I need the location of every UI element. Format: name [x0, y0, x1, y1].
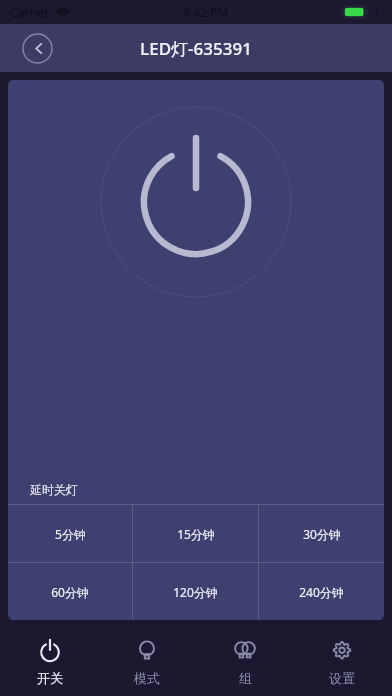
- button[interactable]: 120分钟: [133, 563, 258, 620]
- staticText: 延时关灯: [30, 482, 78, 497]
- staticText: 开关: [37, 670, 63, 686]
- button[interactable]: Power toggle: [8, 80, 384, 474]
- staticText: LED灯-635391: [140, 37, 252, 60]
- staticText: 240分钟: [299, 584, 344, 600]
- staticText: 设置: [329, 670, 355, 686]
- staticText: 120分钟: [173, 584, 218, 600]
- button[interactable]: 30分钟: [259, 505, 384, 562]
- staticText: 4:42 PM: [183, 4, 229, 20]
- button[interactable]: Back: [21, 32, 53, 64]
- button[interactable]: 开关: [2, 628, 98, 696]
- staticText: 15分钟: [177, 526, 215, 542]
- staticText: 模式: [134, 670, 160, 686]
- staticText: Carrier: [10, 4, 50, 20]
- button[interactable]: 60分钟: [8, 563, 132, 620]
- staticText: 组: [239, 670, 252, 686]
- button[interactable]: 模式: [99, 628, 195, 696]
- button[interactable]: 设置: [294, 628, 390, 696]
- staticText: 60分钟: [51, 584, 89, 600]
- button[interactable]: 240分钟: [259, 563, 384, 620]
- button[interactable]: 15分钟: [133, 505, 258, 562]
- staticText: 5分钟: [55, 526, 86, 542]
- button[interactable]: 5分钟: [8, 505, 132, 562]
- staticText: 30分钟: [303, 526, 341, 542]
- button[interactable]: 组: [197, 628, 293, 696]
